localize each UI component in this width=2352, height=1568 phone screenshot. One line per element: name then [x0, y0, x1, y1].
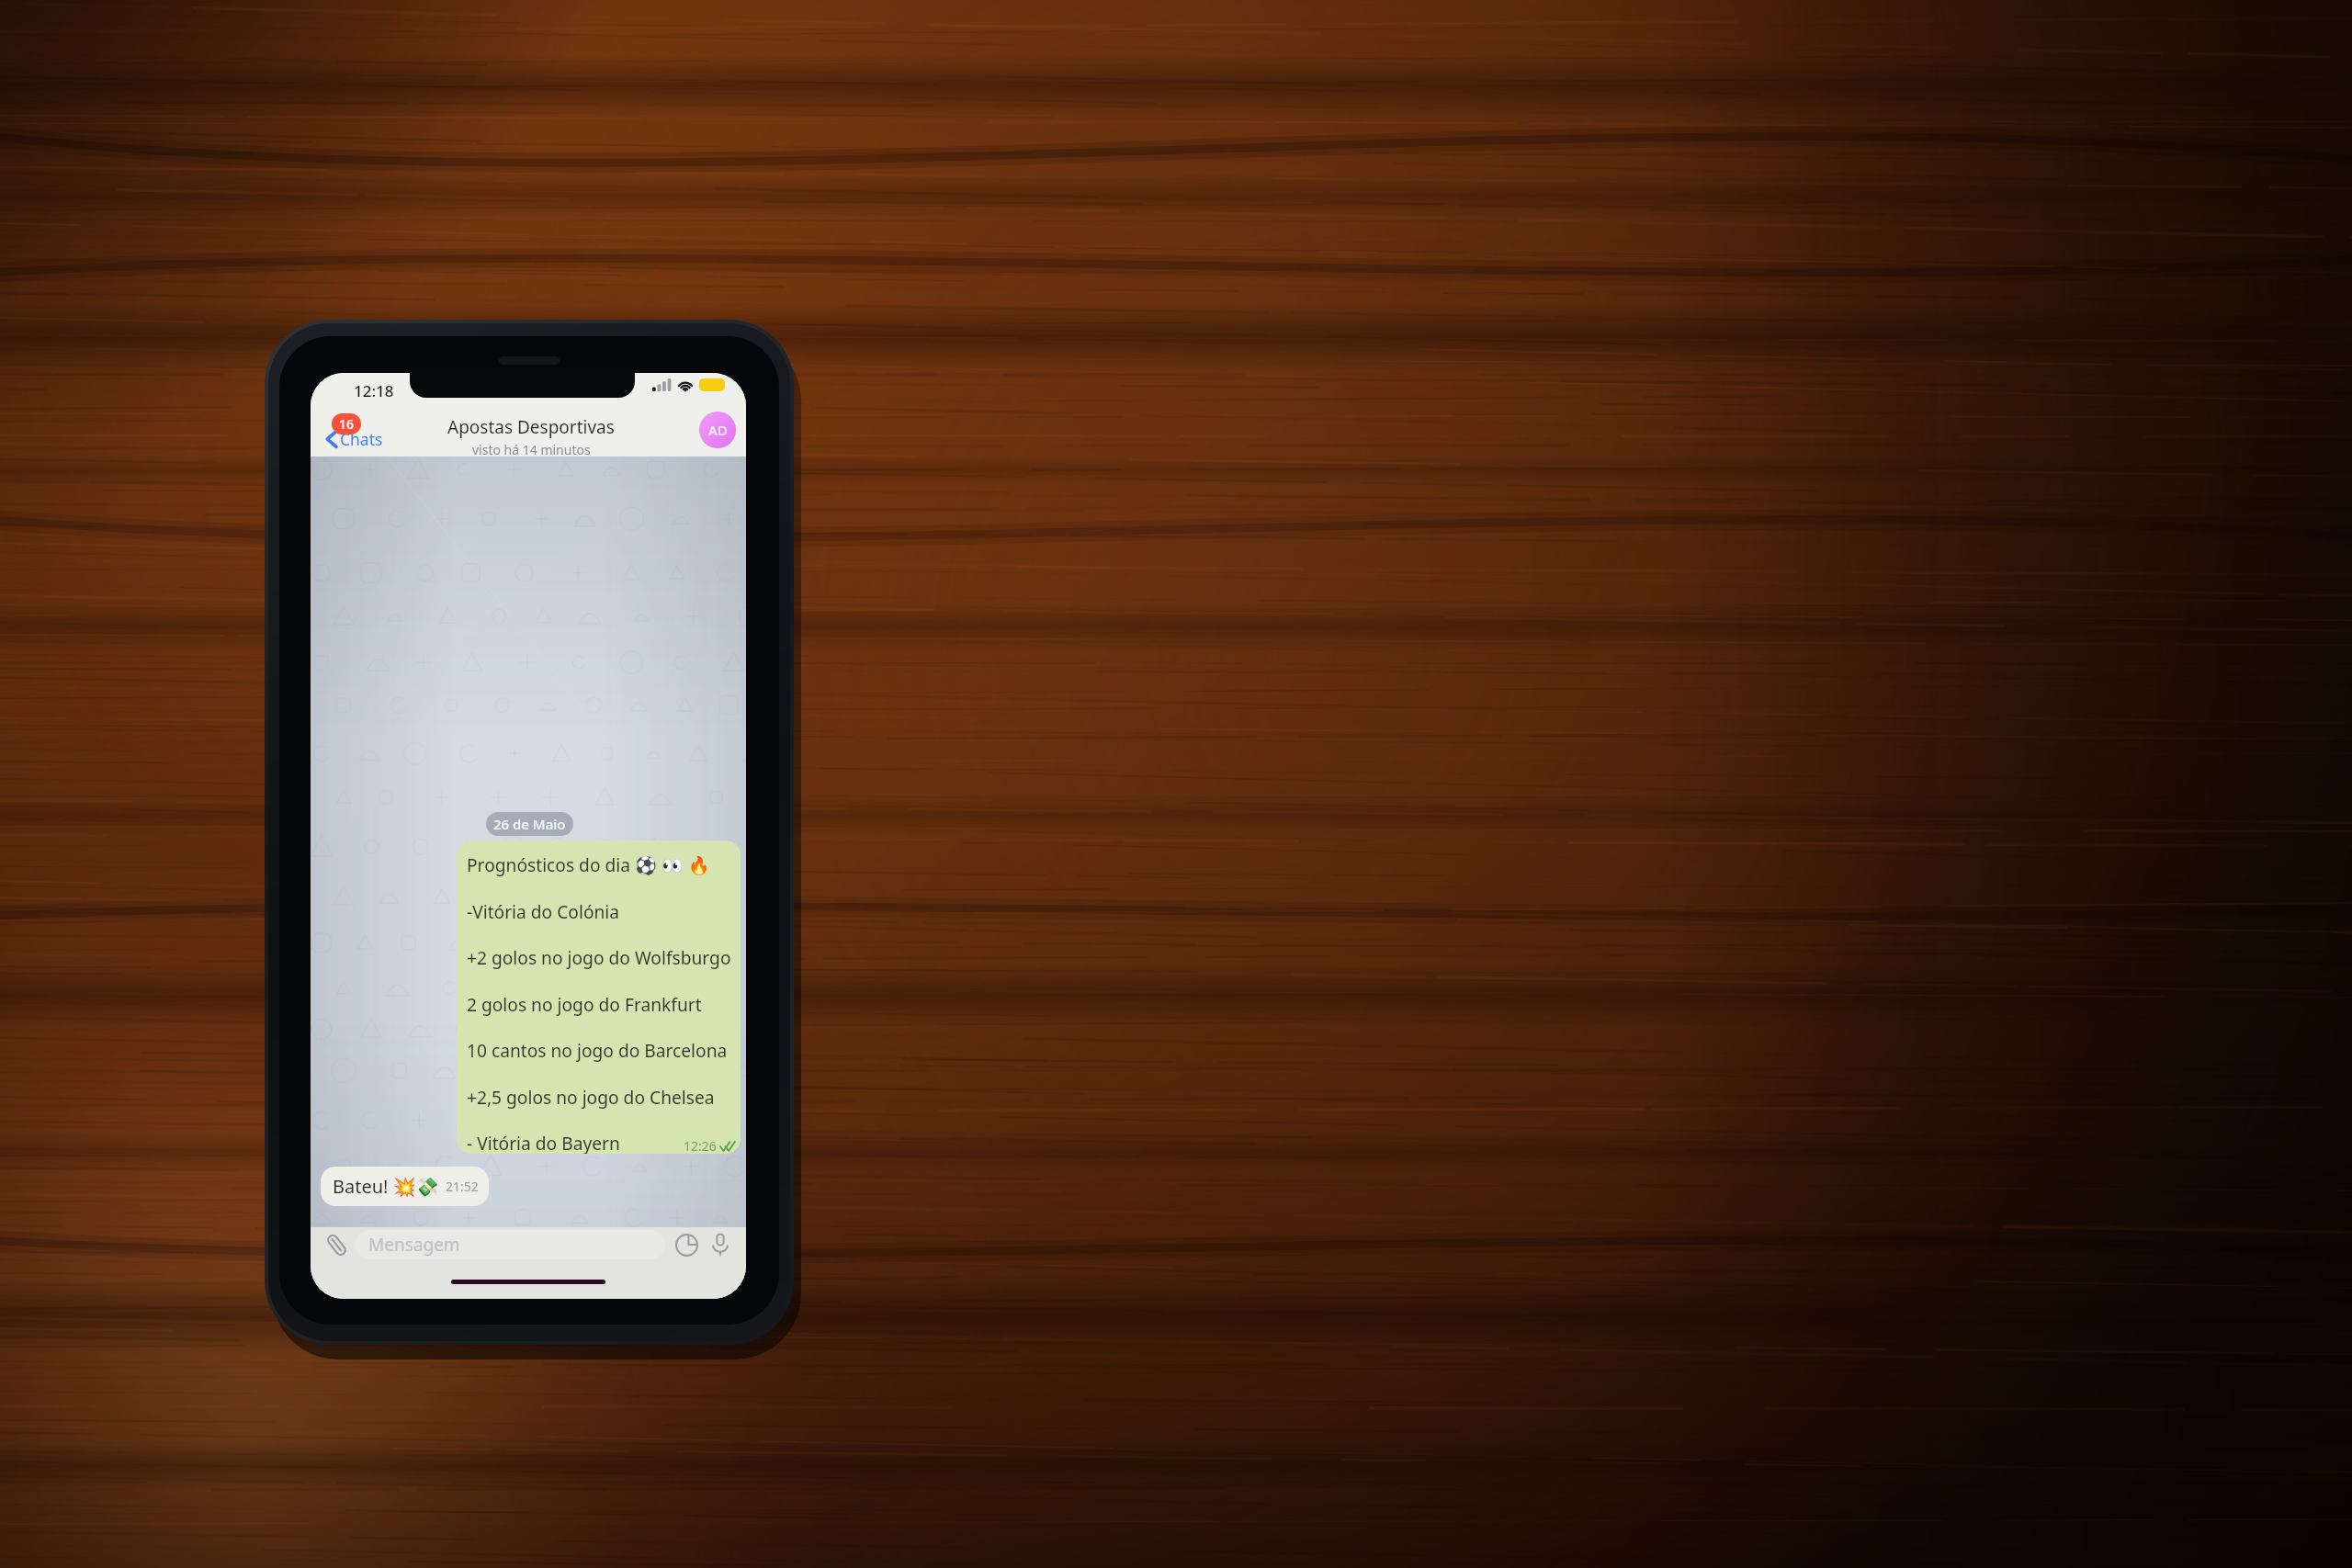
- staticText: Chats: [340, 428, 383, 450]
- staticText: Bateu! 💥💸: [333, 1174, 439, 1199]
- staticText: 10 cantos no jogo do Barcelona: [467, 1038, 728, 1062]
- staticText: 2 golos no jogo do Frankfurt: [467, 992, 702, 1016]
- staticText: 12:18: [354, 380, 394, 401]
- staticText: AD: [708, 421, 728, 439]
- button[interactable]: Record voice message: [707, 1231, 734, 1258]
- staticText: 12:26: [684, 1137, 717, 1154]
- staticText: +2 golos no jogo do Wolfsburgo: [467, 945, 731, 969]
- staticText: Mensagem: [368, 1233, 460, 1257]
- staticText: +2,5 golos no jogo do Chelsea: [467, 1085, 715, 1109]
- button[interactable]: Attach file: [322, 1231, 350, 1258]
- staticText: Apostas Desportivas: [447, 415, 615, 439]
- staticText: 21:52: [446, 1178, 479, 1195]
- button[interactable]: Bateu! 💥💸: [321, 1167, 489, 1206]
- staticText: - Vitória do Bayern: [467, 1131, 620, 1154]
- button[interactable]: Mensagem: [356, 1230, 665, 1259]
- button[interactable]: Prognósticos do dia ⚽️ 👀 🔥: [457, 840, 741, 1154]
- staticText: visto há 14 minutos: [472, 441, 591, 458]
- staticText: -Vitória do Colónia: [467, 899, 620, 923]
- button[interactable]: Profile photo: [699, 412, 736, 448]
- staticText: 16: [339, 415, 355, 433]
- button[interactable]: Stickers: [673, 1231, 700, 1258]
- button[interactable]: Chats: [325, 428, 383, 450]
- staticText: 26 de Maio: [493, 815, 566, 833]
- staticText: Prognósticos do dia ⚽️ 👀 🔥: [467, 852, 710, 876]
